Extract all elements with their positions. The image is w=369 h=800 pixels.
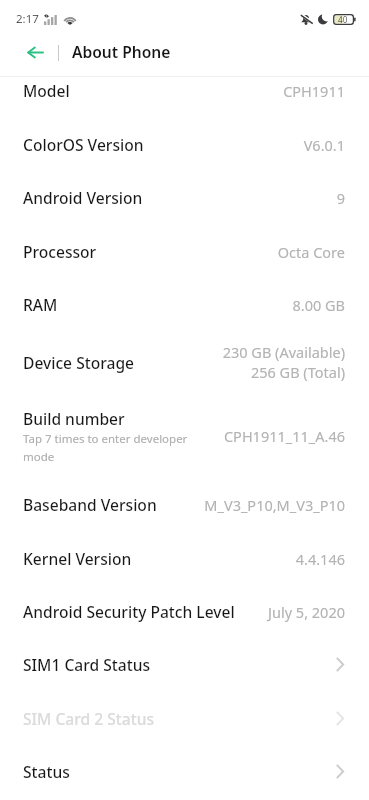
staticText: 4.4.146 bbox=[295, 549, 345, 569]
staticText: Android Version bbox=[23, 187, 143, 208]
staticText: Build number bbox=[23, 408, 125, 429]
staticText: 8.00 GB bbox=[292, 295, 345, 315]
staticText: SIM1 Card Status bbox=[23, 654, 151, 675]
staticText: Device Storage bbox=[23, 352, 135, 373]
staticText: Processor bbox=[23, 241, 97, 262]
button[interactable]: Processor bbox=[0, 225, 369, 278]
staticText: 40 bbox=[338, 14, 348, 25]
staticText: SIM Card 2 Status bbox=[23, 708, 155, 729]
button[interactable]: SIM Card 2 Status bbox=[0, 692, 369, 745]
staticText: M_V3_P10,M_V3_P10 bbox=[204, 495, 345, 515]
staticText: 256 GB (Total) bbox=[250, 362, 345, 382]
staticText: V6.0.1 bbox=[303, 135, 345, 155]
staticText: July 5, 2020 bbox=[268, 602, 345, 622]
staticText: Status bbox=[23, 761, 70, 782]
staticText: Octa Core bbox=[277, 242, 345, 262]
button[interactable]: Android Version bbox=[0, 171, 369, 224]
button[interactable]: Status bbox=[0, 745, 369, 798]
staticText: About Phone bbox=[72, 41, 171, 62]
staticText: RAM bbox=[23, 294, 58, 315]
staticText: ColorOS Version bbox=[23, 134, 144, 155]
button[interactable]: ColorOS Version bbox=[0, 118, 369, 171]
staticText: Kernel Version bbox=[23, 548, 132, 569]
staticText: Baseband Version bbox=[23, 494, 157, 515]
button[interactable]: Kernel Version bbox=[0, 532, 369, 585]
staticText: CPH1911_11_A.46 bbox=[223, 426, 345, 446]
button[interactable]: Baseband Version bbox=[0, 478, 369, 531]
button[interactable]: Device Storage bbox=[0, 330, 369, 394]
button[interactable]: Build number bbox=[0, 394, 369, 477]
button[interactable]: RAM bbox=[0, 278, 369, 331]
staticText: Tap 7 times to enter developer mode bbox=[23, 431, 208, 464]
button[interactable]: Android Security Patch Level bbox=[0, 585, 369, 638]
staticText: 9 bbox=[336, 188, 345, 208]
button[interactable]: Model bbox=[0, 64, 369, 117]
staticText: Model bbox=[23, 80, 70, 101]
staticText: 230 GB (Available) bbox=[222, 342, 345, 362]
staticText: Android Security Patch Level bbox=[23, 601, 235, 622]
button[interactable]: Back bbox=[0, 30, 58, 75]
staticText: 2:17 bbox=[16, 11, 39, 27]
staticText: CPH1911 bbox=[283, 81, 345, 101]
button[interactable]: SIM1 Card Status bbox=[0, 638, 369, 691]
